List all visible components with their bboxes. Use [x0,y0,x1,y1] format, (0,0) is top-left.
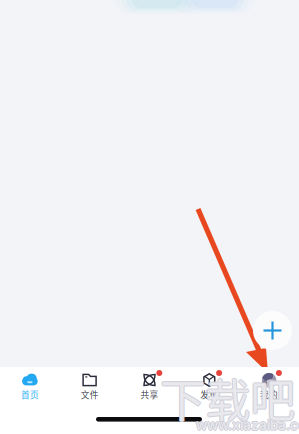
staticText: www.xiazaiba.com [196,416,299,432]
staticText: www.xiazaiba.com [196,418,299,434]
staticText: www.xiazaiba.com [197,417,299,433]
staticText: 下载吧 [160,364,295,430]
staticText: 发现 [200,388,218,401]
staticText: 我的 [260,388,278,401]
staticText: 下载吧 [159,365,294,431]
staticText: www.xiazaiba.com [196,417,299,433]
button[interactable]: 我的 [239,367,299,413]
staticText: www.xiazaiba.com [195,417,299,433]
staticText: 下载吧 [160,365,295,431]
staticText: 文件 [81,388,99,401]
staticText: 共享 [140,388,158,401]
staticText: 下载吧 [160,366,295,432]
staticText: 下载吧 [161,365,296,431]
button[interactable]: 首页 [0,367,60,413]
button[interactable]: 文件 [60,367,120,413]
staticText: 首页 [21,388,39,401]
button[interactable]: 共享 [120,367,179,413]
button[interactable]: 发现 [179,367,239,413]
button[interactable]: New [253,311,292,350]
